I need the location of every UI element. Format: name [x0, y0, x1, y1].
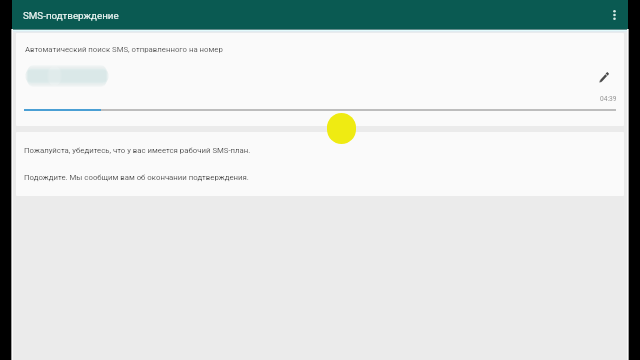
staticText: Автоматический поиск SMS, отправленного … [25, 45, 223, 54]
button[interactable]: More options [603, 3, 626, 26]
button[interactable]: Пожалуйста, убедитесь, что у вас имеется… [16, 132, 624, 196]
staticText: SMS-подтверждение [23, 10, 119, 21]
staticText: Подождите. Мы сообщим вам об окончании п… [24, 173, 249, 182]
button[interactable]: Автоматический поиск SMS, отправленного … [16, 33, 624, 126]
staticText: Пожалуйста, убедитесь, что у вас имеется… [24, 146, 251, 155]
button[interactable]: Edit phone number [593, 66, 615, 88]
staticText: 04:39 [600, 95, 617, 103]
